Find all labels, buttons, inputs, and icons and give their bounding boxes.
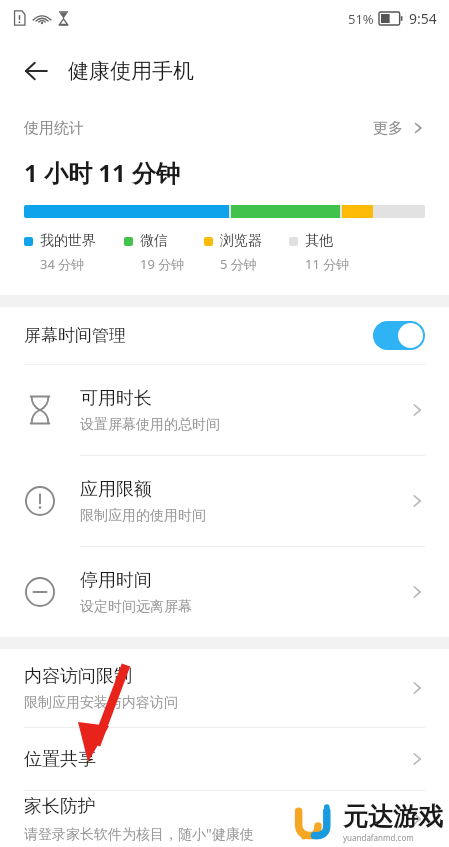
staticText: 5 分钟: [220, 255, 257, 273]
staticText: 限制应用的使用时间: [80, 507, 206, 525]
staticText: 其他: [305, 232, 333, 250]
button[interactable]: 屏幕时间管理开关: [373, 321, 425, 350]
staticText: 1 小时 11 分钟: [24, 156, 180, 189]
staticText: 家长防护: [24, 795, 96, 818]
staticText: 限制应用安装与内容访问: [24, 694, 178, 712]
staticText: 可用时长: [80, 387, 152, 410]
button[interactable]: 家长防护: [0, 791, 449, 847]
staticText: 微信: [140, 232, 168, 250]
staticText: 停用时间: [80, 569, 152, 592]
staticText: 请登录家长软件为核目，随小"健康使: [24, 824, 254, 843]
staticText: 应用限额: [80, 478, 152, 501]
staticText: 屏幕时间管理: [24, 325, 126, 346]
staticText: 9:54: [409, 9, 437, 28]
staticText: 51%: [348, 10, 374, 28]
staticText: 使用统计: [24, 119, 84, 138]
staticText: 19 分钟: [140, 255, 185, 273]
staticText: 设定时间远离屏幕: [80, 598, 192, 616]
staticText: 元达游戏: [343, 801, 443, 832]
staticText: 位置共享: [24, 748, 96, 771]
staticText: 内容访问限制: [24, 665, 132, 688]
button[interactable]: 使用统计: [0, 106, 449, 150]
staticText: 浏览器: [220, 232, 262, 250]
staticText: yuandafanmd.com: [343, 832, 414, 843]
button[interactable]: 位置共享: [0, 728, 449, 790]
staticText: 我的世界: [40, 232, 96, 250]
button[interactable]: 应用限额: [0, 456, 449, 546]
staticText: 34 分钟: [40, 255, 85, 273]
staticText: 健康使用手机: [68, 58, 194, 84]
button[interactable]: 可用时长: [0, 365, 449, 455]
staticText: 设置屏幕使用的总时间: [80, 416, 220, 434]
button[interactable]: 内容访问限制: [0, 649, 449, 727]
button[interactable]: 停用时间: [0, 547, 449, 637]
button[interactable]: 屏幕时间管理: [0, 307, 449, 364]
button[interactable]: Back: [14, 49, 58, 93]
staticText: 更多: [373, 119, 403, 138]
staticText: 11 分钟: [305, 255, 350, 273]
